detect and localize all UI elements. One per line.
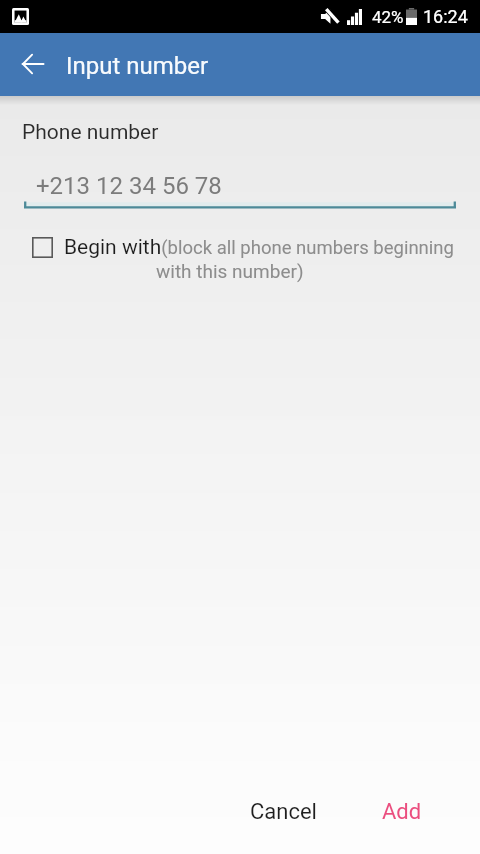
button[interactable]: Begin with checkbox xyxy=(31,236,55,260)
staticText: Phone number xyxy=(22,120,159,145)
staticText: with this number) xyxy=(156,260,304,282)
button[interactable]: Cancel xyxy=(236,791,331,833)
staticText: Cancel xyxy=(250,799,317,825)
staticText: 42% xyxy=(372,7,404,27)
staticText: Begin with(block all phone numbers begin… xyxy=(64,235,454,260)
staticText: +213 12 34 56 78 xyxy=(36,172,222,200)
button[interactable]: Begin with(block all phone numbers begin… xyxy=(64,235,458,282)
staticText: Add xyxy=(382,799,422,825)
button[interactable]: Add xyxy=(368,791,436,833)
staticText: 16:24 xyxy=(423,6,468,27)
button[interactable]: Back xyxy=(9,40,57,88)
staticText: Input number xyxy=(66,52,209,80)
